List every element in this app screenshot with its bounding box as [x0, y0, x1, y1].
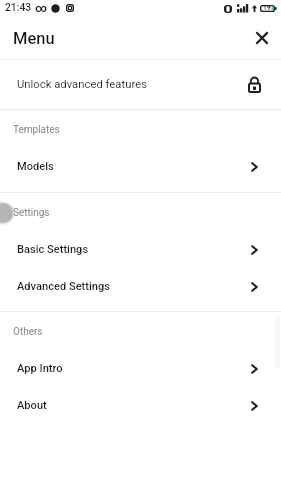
staticText: Models [17, 160, 251, 173]
button[interactable]: Unlock advanced features [0, 60, 281, 110]
staticText: 21:43 [5, 1, 32, 13]
staticText: Basic Settings [17, 243, 251, 256]
button[interactable]: Basic Settings [0, 232, 281, 269]
button[interactable]: Close menu [249, 25, 275, 51]
staticText: Others [13, 326, 43, 338]
staticText: Menu [13, 29, 55, 48]
staticText: Advanced Settings [17, 280, 251, 293]
staticText: Unlock advanced features [17, 78, 248, 91]
button[interactable]: Models [0, 149, 281, 186]
button[interactable]: About [0, 388, 281, 425]
staticText: Templates [13, 124, 60, 136]
button[interactable]: Advanced Settings [0, 269, 281, 306]
staticText: 19 [263, 4, 271, 12]
staticText: Settings [13, 207, 50, 219]
staticText: ∞ [35, 1, 48, 14]
staticText: App Intro [17, 362, 251, 375]
staticText: About [17, 399, 251, 412]
button[interactable]: App Intro [0, 351, 281, 388]
